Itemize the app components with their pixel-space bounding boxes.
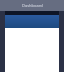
- staticText: Dashboard: [22, 3, 43, 8]
